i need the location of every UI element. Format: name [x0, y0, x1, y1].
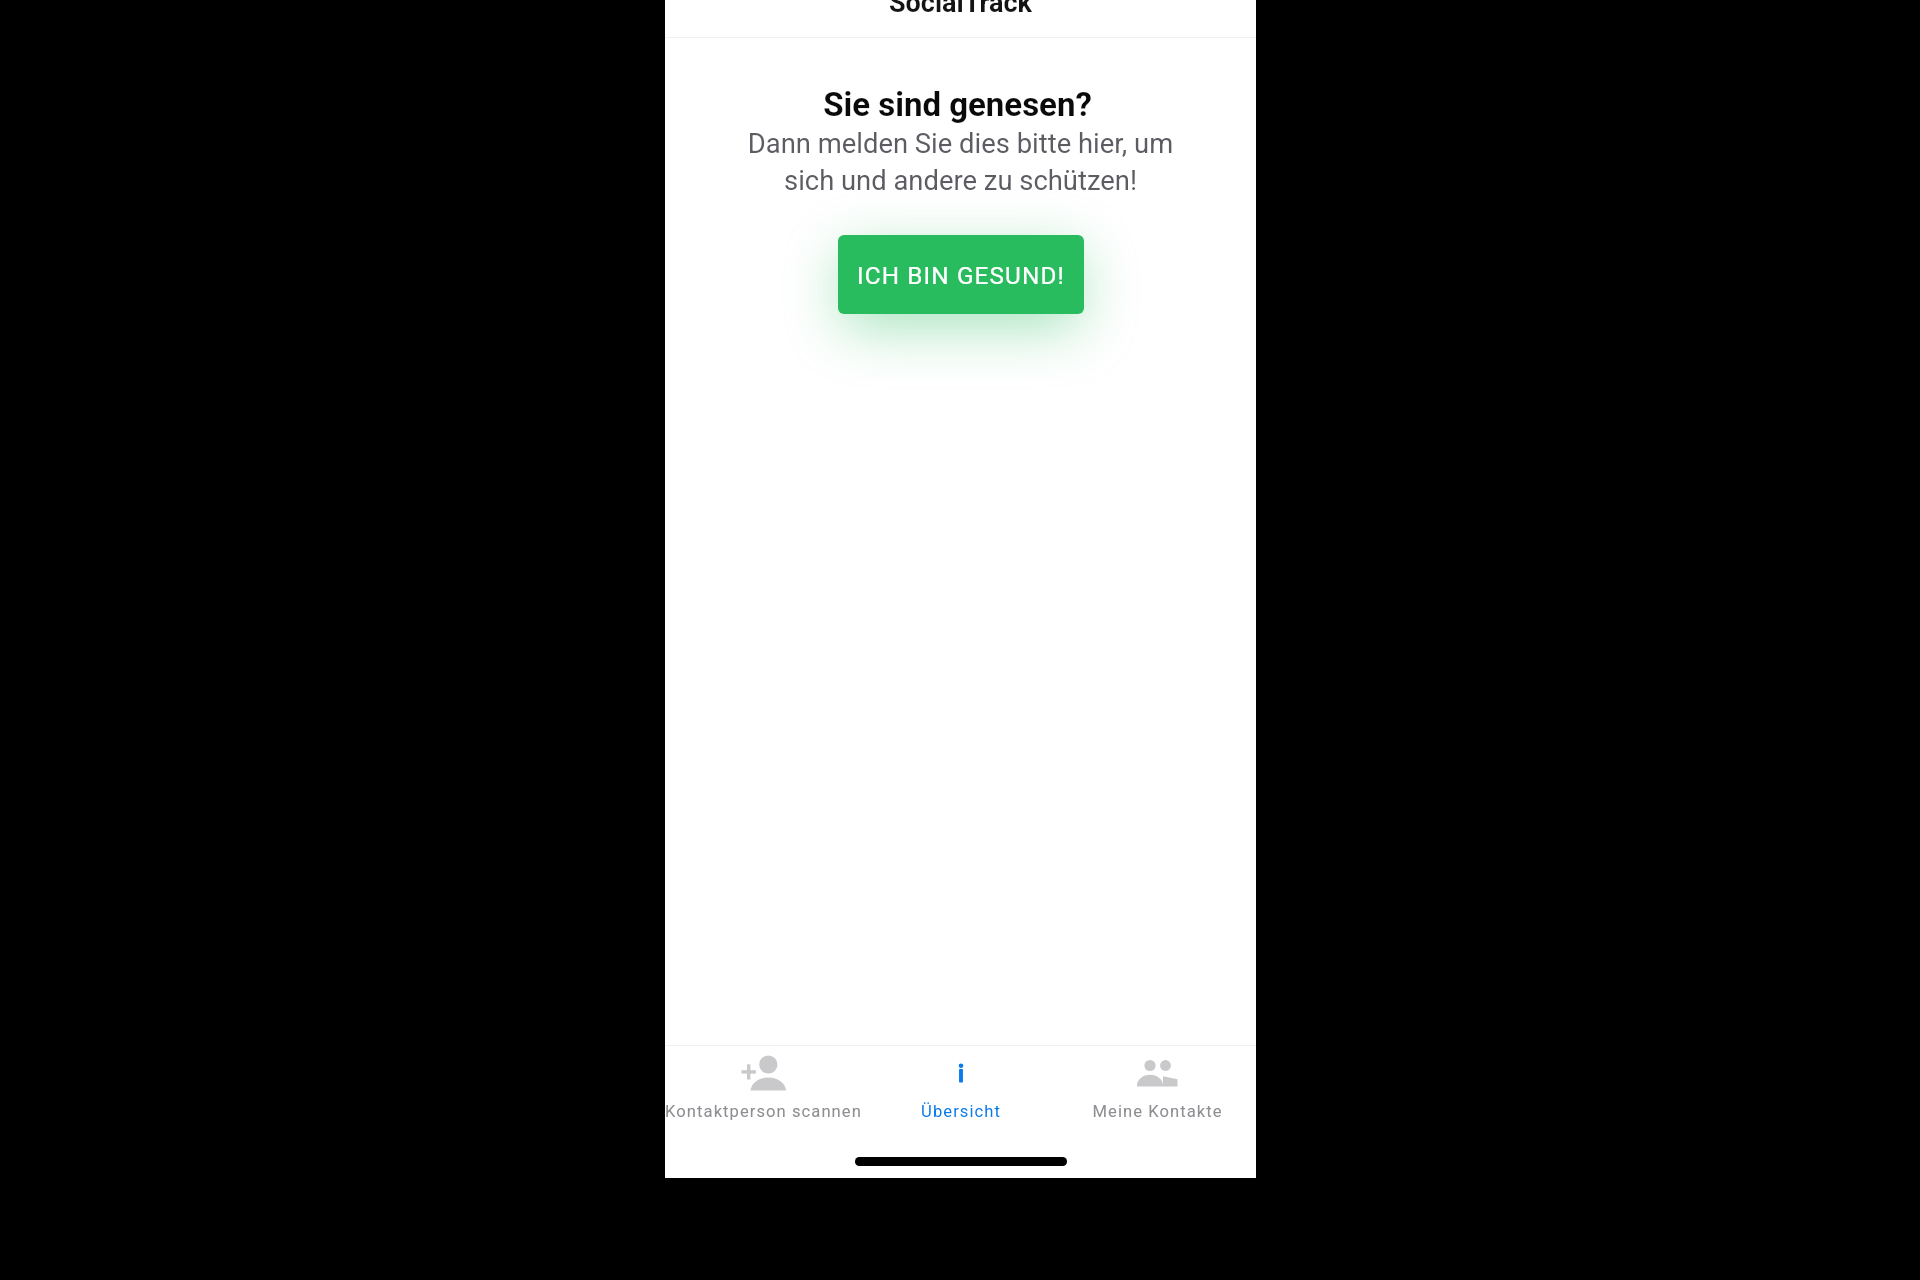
- staticText: Meine Kontakte: [1092, 1102, 1223, 1121]
- staticText: Sie sind genesen?: [662, 85, 1253, 124]
- other: Kontaktperson scannen: [739, 1046, 789, 1092]
- staticText: Kontaktperson scannen: [665, 1102, 862, 1121]
- other: Meine Kontakte: [1133, 1046, 1183, 1092]
- staticText: SocialTrack: [889, 0, 1032, 19]
- staticText: ICH BIN GESUND!: [857, 261, 1065, 289]
- staticText: Dann melden Sie dies bitte hier, um sich…: [665, 128, 1256, 197]
- other: Übersicht: [936, 1046, 986, 1092]
- button[interactable]: Meine Kontakte: [1059, 1046, 1256, 1121]
- button[interactable]: Übersicht: [862, 1046, 1059, 1121]
- staticText: Übersicht: [921, 1102, 1001, 1121]
- button[interactable]: ICH BIN GESUND!: [838, 235, 1084, 314]
- button[interactable]: Kontaktperson scannen: [665, 1046, 862, 1121]
